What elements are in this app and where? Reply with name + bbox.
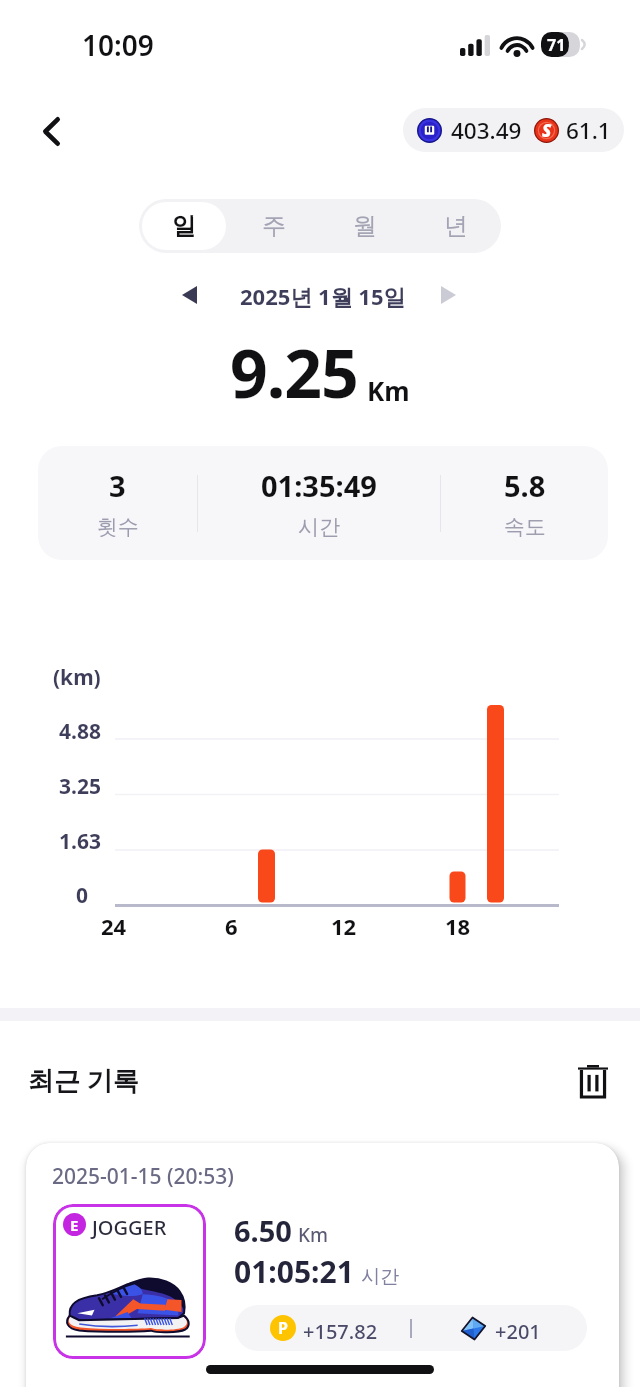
button[interactable]: Next day bbox=[425, 272, 471, 318]
staticText: 년 bbox=[444, 211, 468, 241]
staticText: 61.1 bbox=[566, 115, 611, 146]
staticText: 01:35:49 bbox=[261, 466, 377, 505]
staticText: 5.8 bbox=[504, 466, 546, 505]
button[interactable]: 주 bbox=[232, 202, 316, 250]
staticText: 01:05:21 bbox=[234, 1251, 354, 1292]
staticText: JOGGER bbox=[92, 1214, 167, 1241]
staticText: +157.82 bbox=[303, 1318, 378, 1345]
button[interactable]: 01:35:49 bbox=[198, 446, 440, 560]
button[interactable]: Back bbox=[25, 105, 77, 157]
staticText: S bbox=[542, 119, 552, 142]
staticText: 3.25 bbox=[59, 772, 101, 801]
button[interactable]: 2025-01-15 (20:53) bbox=[26, 1143, 619, 1387]
button[interactable]: E bbox=[53, 1204, 206, 1359]
staticText: 10:09 bbox=[82, 26, 154, 64]
staticText: 횟수 bbox=[97, 514, 139, 540]
staticText: 18 bbox=[445, 911, 471, 937]
button[interactable]: 월 bbox=[322, 202, 407, 250]
staticText: 2025년 1월 15일 bbox=[240, 281, 406, 311]
staticText: E bbox=[70, 1215, 79, 1235]
staticText: 0 bbox=[76, 881, 89, 910]
staticText: 6.50 bbox=[234, 1211, 292, 1250]
staticText: 4.88 bbox=[59, 717, 101, 746]
button[interactable]: 403.49 bbox=[403, 108, 624, 152]
staticText: 시간 bbox=[298, 514, 340, 540]
staticText: 주 bbox=[262, 211, 286, 241]
staticText: 일 bbox=[172, 211, 196, 241]
staticText: 403.49 bbox=[451, 115, 522, 146]
button[interactable]: 최근 기록 bbox=[28, 1062, 139, 1098]
staticText: 24 bbox=[101, 911, 127, 937]
button[interactable]: Previous day bbox=[166, 272, 212, 318]
button[interactable]: P bbox=[235, 1305, 587, 1351]
staticText: P bbox=[278, 1317, 288, 1339]
staticText: 2025-01-15 (20:53) bbox=[52, 1162, 234, 1191]
staticText: 최근 기록 bbox=[28, 1062, 139, 1098]
staticText: +201 bbox=[495, 1318, 541, 1345]
button[interactable]: 5.8 bbox=[441, 446, 608, 560]
staticText: 월 bbox=[353, 211, 377, 241]
staticText: 9.25 bbox=[230, 327, 358, 417]
staticText: 71 bbox=[547, 34, 566, 56]
staticText: 12 bbox=[331, 911, 357, 937]
button[interactable]: Delete bbox=[568, 1056, 618, 1106]
button[interactable]: 년 bbox=[413, 202, 498, 250]
staticText: Km bbox=[298, 1222, 329, 1248]
staticText: 3 bbox=[109, 466, 126, 505]
button[interactable]: 3 bbox=[38, 446, 197, 560]
button[interactable]: 일 bbox=[142, 202, 226, 250]
staticText: 6 bbox=[225, 911, 238, 937]
staticText: 시간 bbox=[361, 1265, 399, 1289]
staticText: Km bbox=[367, 373, 410, 408]
staticText: 속도 bbox=[504, 514, 546, 540]
staticText: (km) bbox=[53, 663, 101, 692]
staticText: 1.63 bbox=[59, 827, 101, 856]
